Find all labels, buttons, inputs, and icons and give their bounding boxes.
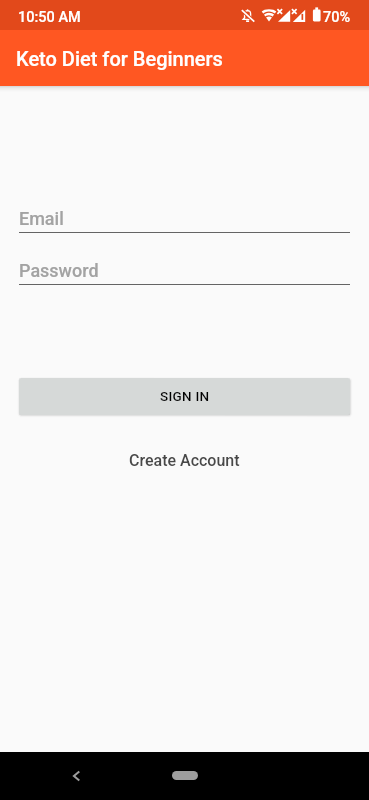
button[interactable]: Email: [19, 205, 350, 237]
button[interactable]: Back: [62, 762, 90, 790]
staticText: Password: [19, 260, 99, 281]
staticText: 10:50 AM: [18, 9, 81, 26]
staticText: Create Account: [129, 451, 240, 470]
staticText: 70%: [323, 9, 351, 26]
button[interactable]: Home: [172, 771, 198, 780]
staticText: Email: [19, 208, 64, 229]
button[interactable]: SIGN IN: [19, 378, 350, 415]
staticText: Keto Diet for Beginners: [16, 47, 223, 70]
button[interactable]: Create Account: [115, 446, 254, 475]
staticText: SIGN IN: [160, 388, 210, 404]
button[interactable]: Password: [19, 257, 350, 289]
